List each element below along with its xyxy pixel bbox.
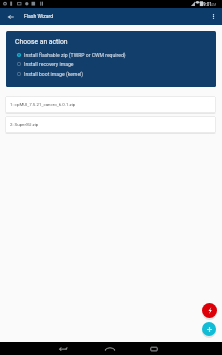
staticText: Install flashable zip (TWRP or CWM requi…	[24, 52, 126, 58]
button[interactable]: Home	[100, 342, 120, 355]
button[interactable]: Install boot image (kernel)	[6, 69, 216, 79]
staticText: 1: cpMUI_7.5.21_cancro_6.0.1.zip	[10, 102, 76, 107]
button[interactable]: Back	[54, 342, 74, 355]
staticText: Flash Wizard	[24, 13, 54, 19]
staticText: AM	[211, 3, 217, 7]
button[interactable]: Flash	[202, 303, 217, 318]
button[interactable]: Recent apps	[144, 342, 164, 355]
button[interactable]: Install flashable zip (TWRP or CWM requi…	[6, 50, 216, 60]
button[interactable]: Back	[2, 8, 19, 25]
button[interactable]: 1: cpMUI_7.5.21_cancro_6.0.1.zip	[5, 96, 216, 113]
button[interactable]: 2: SuperSU.zip	[5, 116, 216, 133]
button[interactable]: Add file	[202, 322, 216, 336]
staticText: Choose an action	[15, 38, 68, 46]
staticText: 9:01	[203, 2, 212, 7]
staticText: Install boot image (kernel)	[24, 71, 84, 77]
staticText: Install recovery image	[24, 61, 74, 67]
button[interactable]: Install recovery image	[6, 59, 216, 69]
staticText: 2: SuperSU.zip	[10, 122, 39, 127]
button[interactable]: More options	[205, 8, 222, 25]
